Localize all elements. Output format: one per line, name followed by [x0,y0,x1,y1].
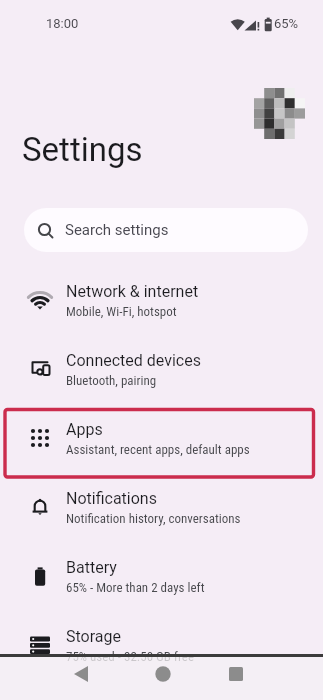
button[interactable]: Network & internet [0,265,323,335]
button[interactable]: Battery [0,541,323,611]
button[interactable] [221,660,251,688]
button[interactable]: Search settings [24,208,308,252]
button[interactable]: Connected devices [0,334,323,404]
staticText: Notification history, conversations [66,511,241,526]
button[interactable] [252,86,304,140]
staticText: Battery [66,558,117,577]
staticText: Network & internet [66,282,199,301]
staticText: Notifications [66,489,157,508]
button[interactable] [67,660,97,688]
staticText: 75% used - 32.50 GB free [66,649,194,664]
staticText: Bluetooth, pairing [66,373,157,388]
button[interactable]: Notifications [0,472,323,542]
staticText: Storage [66,627,121,646]
staticText: 65% [274,16,299,31]
staticText: 18:00 [46,16,79,31]
staticText: Apps [66,420,103,439]
button[interactable]: Apps [0,403,323,473]
staticText: Assistant, recent apps, default apps [66,442,250,457]
button[interactable]: Storage [0,610,323,680]
staticText: Connected devices [66,351,201,370]
staticText: Mobile, Wi-Fi, hotspot [66,304,177,319]
staticText: Search settings [65,221,169,239]
staticText: 65% - More than 2 days left [66,580,205,595]
staticText: Settings [22,130,143,169]
button[interactable] [148,660,178,688]
